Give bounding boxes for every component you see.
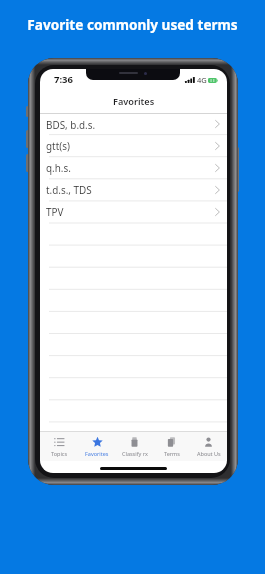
staticText: Terms: [164, 450, 180, 457]
staticText: TPV: [46, 205, 215, 218]
staticText: q.h.s.: [46, 161, 215, 174]
button[interactable]: gtt(s): [40, 135, 227, 156]
staticText: Favorite commonly used terms: [0, 15, 265, 34]
staticText: Favorites: [113, 95, 155, 108]
staticText: 4G: [197, 75, 207, 85]
staticText: t.d.s., TDS: [46, 183, 215, 196]
button[interactable]: About Us: [190, 432, 227, 461]
staticText: gtt(s): [46, 139, 215, 152]
staticText: Favorites: [85, 450, 109, 457]
staticText: Topics: [51, 450, 68, 457]
staticText: Classify rx: [122, 450, 148, 457]
button[interactable]: BDS, b.d.s.: [40, 114, 227, 134]
button[interactable]: Topics: [40, 432, 78, 461]
button[interactable]: Favorites: [78, 432, 116, 461]
staticText: 7:36: [54, 73, 73, 86]
button[interactable]: TPV: [40, 201, 227, 222]
button[interactable]: t.d.s., TDS: [40, 179, 227, 200]
button[interactable]: Terms: [153, 432, 190, 461]
button[interactable]: q.h.s.: [40, 157, 227, 178]
staticText: BDS, b.d.s.: [46, 118, 215, 131]
staticText: About Us: [197, 450, 221, 457]
button[interactable]: Classify rx: [116, 432, 153, 461]
